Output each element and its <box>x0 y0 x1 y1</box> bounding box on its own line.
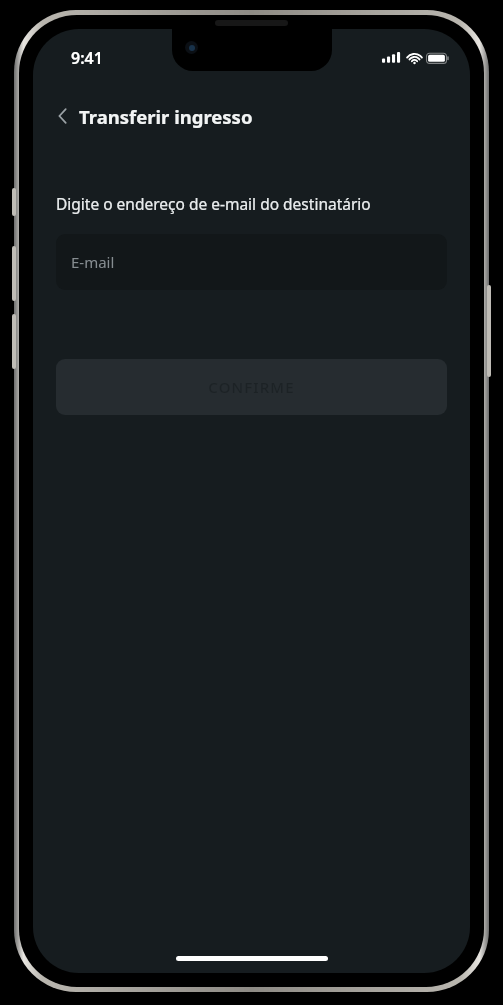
staticText: Digite o endereço de e-mail do destinatá… <box>56 193 371 214</box>
button[interactable]: Voltar <box>47 101 77 131</box>
staticText: 9:41 <box>71 47 103 69</box>
staticText: E-mail <box>71 252 115 272</box>
staticText: Transferir ingresso <box>79 104 253 129</box>
staticText: CONFIRME <box>208 377 295 397</box>
button[interactable]: E-mail <box>56 234 447 290</box>
